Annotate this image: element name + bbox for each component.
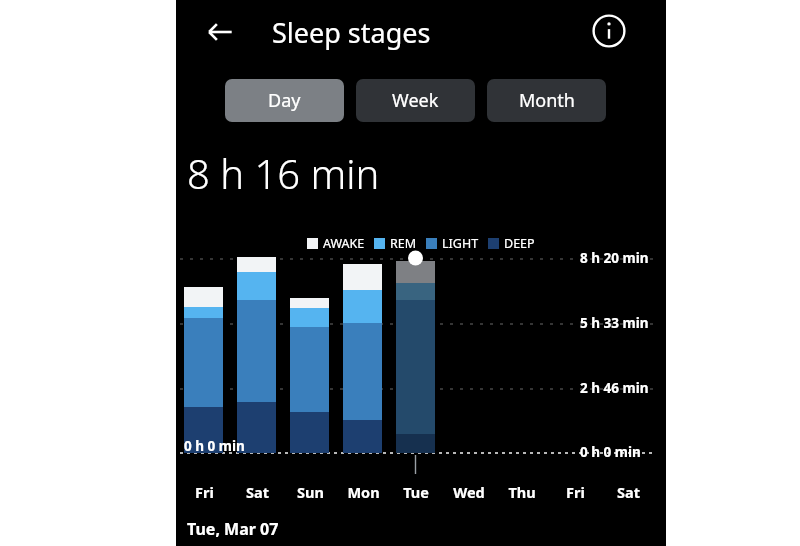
button[interactable]: Information <box>584 6 634 56</box>
staticText: 2 h 46 min <box>580 379 649 397</box>
button[interactable]: Sat <box>231 480 283 504</box>
staticText: Fri <box>566 482 585 502</box>
button[interactable]: Fri <box>178 480 230 504</box>
staticText: LIGHT <box>442 235 479 252</box>
button[interactable]: Month <box>487 79 606 122</box>
button[interactable]: Fri <box>549 480 601 504</box>
staticText: 0 h 0 min <box>580 443 641 461</box>
button[interactable]: Sat <box>602 480 654 504</box>
button[interactable]: Mon <box>337 480 389 504</box>
button[interactable]: Tue <box>390 480 442 504</box>
staticText: REM <box>390 235 417 252</box>
button[interactable]: Thu <box>496 480 548 504</box>
staticText: Day <box>268 88 301 113</box>
staticText: Wed <box>453 482 485 502</box>
staticText: 8 h 20 min <box>580 249 649 267</box>
staticText: DEEP <box>504 235 535 252</box>
staticText: Week <box>392 88 439 113</box>
staticText: Sat <box>246 482 269 502</box>
staticText: Sun <box>297 482 324 502</box>
staticText: Sleep stages <box>272 14 431 51</box>
staticText: Thu <box>508 482 536 502</box>
staticText: Fri <box>195 482 214 502</box>
staticText: 8 h 16 min <box>187 146 380 200</box>
staticText: Mon <box>347 482 380 502</box>
staticText: AWAKE <box>323 235 365 252</box>
button[interactable]: Day <box>225 79 344 122</box>
staticText: Tue <box>403 482 429 502</box>
button[interactable]: Week <box>356 79 475 122</box>
button[interactable]: Wed <box>443 480 495 504</box>
staticText: Tue, Mar 07 <box>187 518 279 540</box>
button[interactable]: Sun <box>284 480 336 504</box>
staticText: Month <box>519 88 575 113</box>
staticText: Sat <box>617 482 640 502</box>
button[interactable]: Back <box>196 8 244 56</box>
staticText: 0 h 0 min <box>184 437 245 455</box>
staticText: 5 h 33 min <box>580 314 649 332</box>
